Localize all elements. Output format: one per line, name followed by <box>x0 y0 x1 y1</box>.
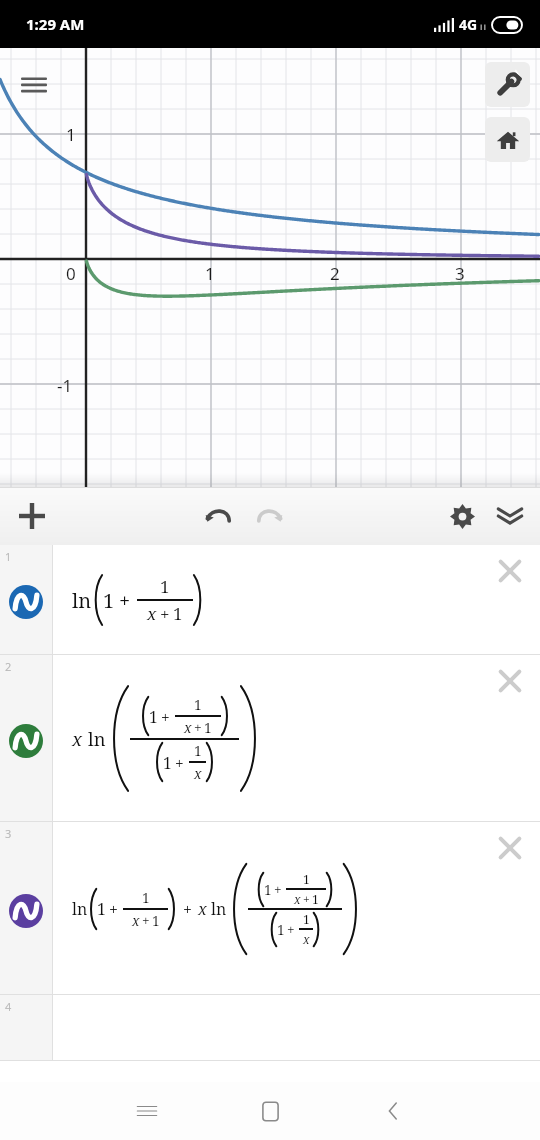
staticText: + <box>274 880 282 899</box>
staticText: 1 <box>277 920 285 939</box>
button[interactable]: Undo <box>194 492 242 540</box>
staticText: 1 <box>97 898 106 920</box>
staticText: 4 <box>5 999 12 1014</box>
staticText: ln <box>72 898 88 920</box>
staticText: x <box>147 602 157 625</box>
button[interactable]: Delete expression 1 <box>490 551 530 591</box>
staticText: 1 <box>66 123 76 146</box>
staticText: 1 <box>264 880 272 899</box>
staticText: 2 <box>5 659 12 674</box>
button[interactable]: Home view <box>485 117 530 162</box>
staticText: x <box>294 891 301 907</box>
button[interactable]: Home <box>246 1087 294 1135</box>
staticText: 1 <box>149 706 158 727</box>
button[interactable]: 1 <box>0 545 52 655</box>
button[interactable]: Menu <box>12 62 56 106</box>
staticText: 3 <box>455 262 465 285</box>
staticText: 2 <box>330 262 340 285</box>
button[interactable]: Collapse keypad <box>486 492 534 540</box>
staticText: 1 <box>142 888 150 907</box>
staticText: -1 <box>57 374 73 397</box>
staticText: + <box>194 718 202 737</box>
staticText: + <box>109 898 118 920</box>
staticText: 1 <box>163 752 172 773</box>
staticText: 3 <box>5 826 12 841</box>
staticText: 1 <box>204 718 212 737</box>
staticText: ln <box>211 898 227 920</box>
staticText: + <box>142 911 150 930</box>
button[interactable]: 3 <box>0 822 540 995</box>
staticText: 1 <box>303 911 310 927</box>
staticText: x <box>303 931 310 947</box>
staticText: 4G <box>459 15 478 34</box>
button[interactable]: 3 <box>0 822 52 995</box>
other: Toggle graph 2 <box>9 724 43 758</box>
staticText: 1 <box>312 891 319 907</box>
staticText: + <box>161 706 170 727</box>
staticText: + <box>175 752 184 773</box>
staticText: 0 <box>66 262 76 285</box>
staticText: x <box>132 911 140 930</box>
staticText: + <box>119 587 131 614</box>
staticText: 1 <box>152 911 160 930</box>
staticText: ln <box>72 587 92 614</box>
staticText: 1 <box>103 587 115 614</box>
staticText: + <box>160 602 170 625</box>
staticText: + <box>183 898 192 920</box>
staticText: 1 <box>173 602 183 625</box>
button[interactable]: 2 <box>0 655 540 822</box>
staticText: 1 <box>194 695 202 714</box>
button[interactable]: 2 <box>0 655 52 822</box>
staticText: 1 <box>194 741 202 760</box>
button[interactable]: Delete expression 2 <box>490 661 530 701</box>
staticText: + <box>287 920 295 939</box>
button[interactable]: Add expression <box>8 492 56 540</box>
button[interactable]: Graph settings <box>485 62 530 107</box>
staticText: 1 <box>160 575 170 598</box>
staticText: x <box>194 764 202 783</box>
staticText: 1 <box>303 871 310 887</box>
button[interactable]: Settings <box>438 492 486 540</box>
staticText: 1 <box>5 549 12 564</box>
other: Toggle graph 1 <box>9 585 43 619</box>
staticText: x <box>72 726 83 751</box>
button[interactable]: Recents <box>123 1087 171 1135</box>
staticText: x <box>198 898 207 920</box>
staticText: + <box>303 891 310 907</box>
button[interactable]: Redo <box>246 492 294 540</box>
button[interactable]: 1 <box>0 545 540 655</box>
other: Toggle graph 3 <box>9 894 43 928</box>
button[interactable]: Delete expression 3 <box>490 828 530 868</box>
button[interactable]: Back <box>369 1087 417 1135</box>
staticText: 1:29 AM <box>26 14 85 34</box>
button[interactable]: 4 <box>0 995 540 1060</box>
staticText: ln <box>88 726 106 751</box>
staticText: 1 <box>205 262 215 285</box>
staticText: x <box>184 718 192 737</box>
